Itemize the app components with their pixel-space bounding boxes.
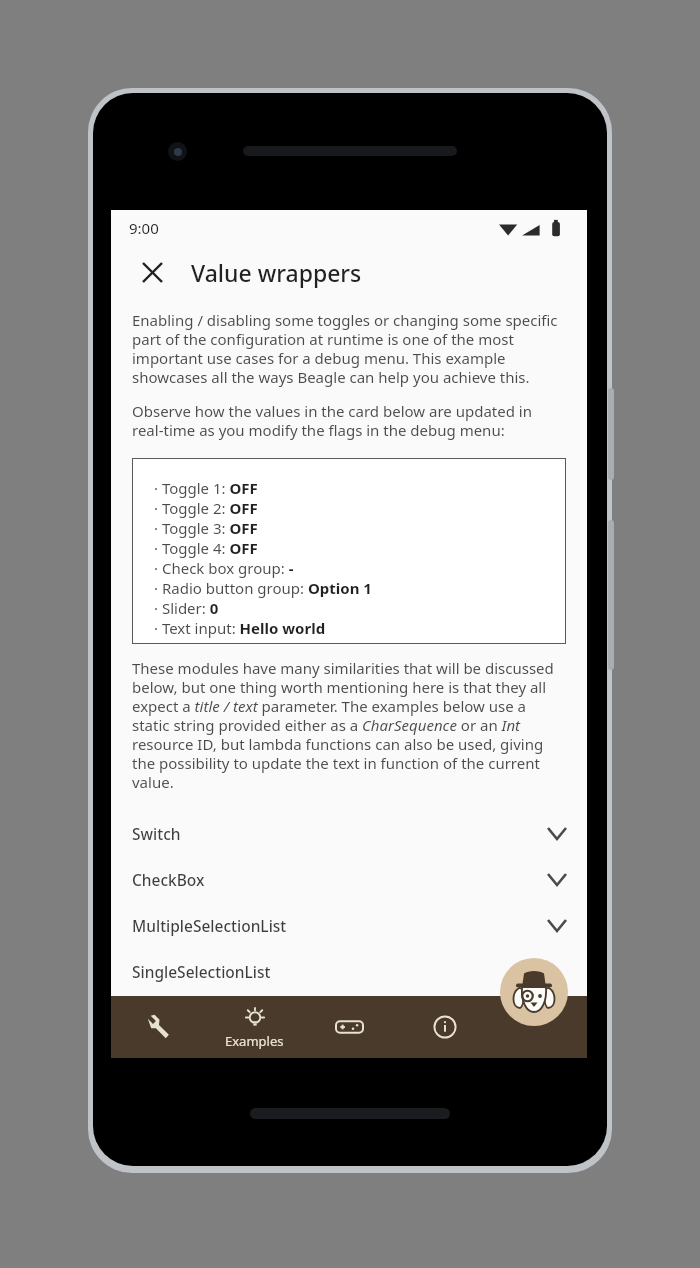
staticText: Examples (225, 1032, 284, 1050)
staticText: · Toggle 2: OFF (154, 498, 258, 518)
staticText: · Check box group: - (154, 558, 294, 578)
staticText: Enabling / disabling some toggles or cha… (132, 310, 566, 387)
button[interactable]: SingleSelectionList (111, 948, 587, 994)
button[interactable]: Close (131, 251, 173, 293)
staticText: These modules have many similarities tha… (132, 658, 566, 792)
staticText: CheckBox (132, 869, 205, 890)
staticText: 9:00 (129, 218, 159, 238)
staticText: · Toggle 4: OFF (154, 538, 258, 558)
staticText: · Radio button group: Option 1 (154, 578, 372, 598)
button[interactable]: Tools (111, 996, 207, 1058)
staticText: · Text input: Hello world (154, 618, 326, 638)
staticText: · Toggle 1: OFF (154, 478, 258, 498)
staticText: Value wrappers (191, 257, 362, 288)
button[interactable]: CheckBox (111, 856, 587, 902)
button[interactable]: Playground (302, 996, 397, 1058)
button[interactable]: Examples (207, 996, 302, 1058)
button[interactable]: Open Beagle debug menu (500, 958, 568, 1026)
staticText: · Slider: 0 (154, 598, 219, 618)
staticText: Switch (132, 823, 181, 844)
staticText: Observe how the values in the card below… (132, 401, 566, 440)
button[interactable]: MultipleSelectionList (111, 902, 587, 948)
staticText: MultipleSelectionList (132, 915, 287, 936)
staticText: · Toggle 3: OFF (154, 518, 258, 538)
button[interactable]: Switch (111, 810, 587, 856)
staticText: SingleSelectionList (132, 961, 271, 982)
button[interactable]: Info (397, 996, 492, 1058)
